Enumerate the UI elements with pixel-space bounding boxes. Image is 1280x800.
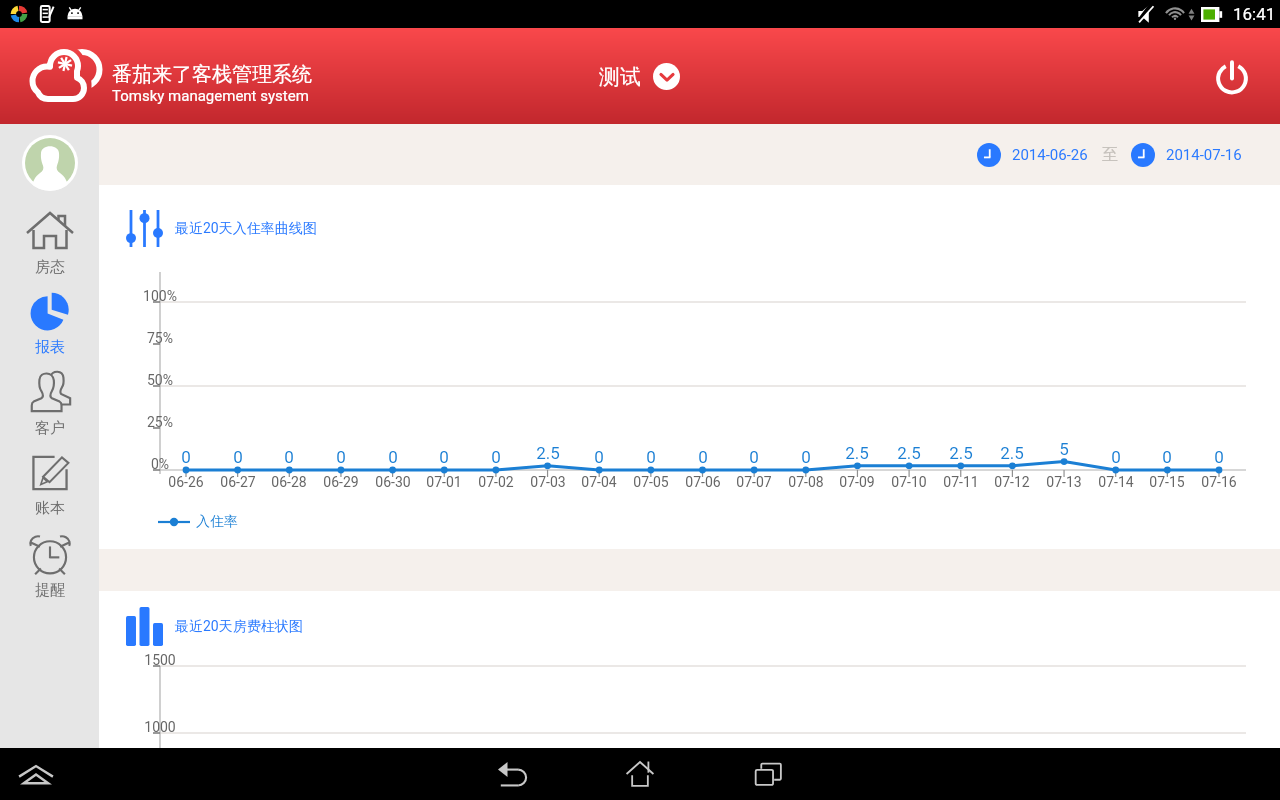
staticText: 报表 xyxy=(35,338,65,357)
button[interactable]: Recents xyxy=(739,748,797,800)
staticText: 75% xyxy=(120,330,200,346)
staticText: 0% xyxy=(120,456,200,472)
button[interactable]: Logout xyxy=(1206,50,1258,102)
staticText: 0 xyxy=(249,447,329,467)
staticText: 0 xyxy=(611,447,691,467)
staticText: 0 xyxy=(404,447,484,467)
staticText: 06-26 xyxy=(146,474,226,490)
staticText: Tomsky management system xyxy=(112,87,309,105)
staticText: 客户 xyxy=(35,419,65,438)
staticText: 06-29 xyxy=(301,474,381,490)
staticText: 07-10 xyxy=(869,474,949,490)
staticText: 2014-06-26 xyxy=(1012,146,1088,164)
button[interactable]: 报表 xyxy=(0,281,99,362)
staticText: 0 xyxy=(766,447,846,467)
staticText: 2.5 xyxy=(869,443,949,463)
staticText: 07-05 xyxy=(611,474,691,490)
staticText: 07-09 xyxy=(817,474,897,490)
staticText: 100% xyxy=(120,288,200,304)
staticText: 至 xyxy=(1102,145,1118,165)
staticText: 0 xyxy=(353,447,433,467)
staticText: 16:41 xyxy=(1233,4,1276,24)
staticText: 0 xyxy=(1127,447,1207,467)
staticText: 06-28 xyxy=(249,474,329,490)
button[interactable]: 2014-07-16 xyxy=(1131,143,1242,167)
staticText: 25% xyxy=(120,414,200,430)
staticText: 50% xyxy=(120,372,200,388)
staticText: 07-14 xyxy=(1076,474,1156,490)
button[interactable]: Menu xyxy=(14,752,58,796)
staticText: 07-02 xyxy=(456,474,536,490)
staticText: 账本 xyxy=(35,499,65,518)
staticText: 最近20天入住率曲线图 xyxy=(175,220,317,238)
staticText: 0 xyxy=(301,447,381,467)
staticText: 2014-07-16 xyxy=(1166,146,1242,164)
button[interactable]: 房态 xyxy=(0,200,99,281)
staticText: 07-03 xyxy=(508,474,588,490)
staticText: 06-30 xyxy=(353,474,433,490)
staticText: 07-08 xyxy=(766,474,846,490)
staticText: 07-16 xyxy=(1179,474,1259,490)
staticText: 06-27 xyxy=(198,474,278,490)
button[interactable]: Profile xyxy=(22,135,78,191)
staticText: 入住率 xyxy=(196,513,238,531)
button[interactable]: Home xyxy=(611,748,669,800)
button[interactable]: 客户 xyxy=(0,362,99,443)
staticText: 提醒 xyxy=(35,581,65,600)
staticText: 07-04 xyxy=(559,474,639,490)
staticText: 2.5 xyxy=(921,443,1001,463)
staticText: 测试 xyxy=(599,64,641,90)
staticText: 0 xyxy=(198,447,278,467)
staticText: 番茄来了客栈管理系统 xyxy=(112,62,312,87)
button[interactable]: Back xyxy=(483,748,541,800)
staticText: 0 xyxy=(559,447,639,467)
button[interactable]: 2014-06-26 xyxy=(977,143,1088,167)
staticText: 1000 xyxy=(120,719,200,735)
staticText: 房态 xyxy=(35,258,65,277)
staticText: 0 xyxy=(1179,447,1259,467)
staticText: 0 xyxy=(1076,447,1156,467)
staticText: 07-07 xyxy=(714,474,794,490)
staticText: 07-11 xyxy=(921,474,1001,490)
staticText: 2.5 xyxy=(817,443,897,463)
button[interactable]: 测试 xyxy=(599,63,680,90)
staticText: 0 xyxy=(456,447,536,467)
button[interactable]: 提醒 xyxy=(0,524,99,605)
staticText: 07-01 xyxy=(404,474,484,490)
staticText: 0 xyxy=(663,447,743,467)
staticText: 07-12 xyxy=(972,474,1052,490)
staticText: 1500 xyxy=(120,652,200,668)
staticText: 5 xyxy=(1024,439,1104,459)
button[interactable]: 账本 xyxy=(0,443,99,524)
staticText: 最近20天房费柱状图 xyxy=(175,618,303,636)
staticText: 0 xyxy=(146,447,226,467)
staticText: 07-06 xyxy=(663,474,743,490)
staticText: 2.5 xyxy=(972,443,1052,463)
staticText: 2.5 xyxy=(508,443,588,463)
staticText: 07-13 xyxy=(1024,474,1104,490)
staticText: 0 xyxy=(714,447,794,467)
staticText: 07-15 xyxy=(1127,474,1207,490)
